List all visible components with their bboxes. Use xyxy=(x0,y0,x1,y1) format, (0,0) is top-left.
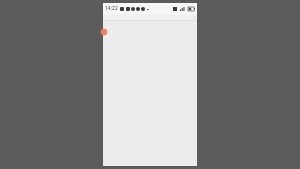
button[interactable]: Profile xyxy=(99,27,109,37)
staticText: 14:22 xyxy=(105,5,118,12)
button[interactable]: Toolbar xyxy=(103,14,197,21)
